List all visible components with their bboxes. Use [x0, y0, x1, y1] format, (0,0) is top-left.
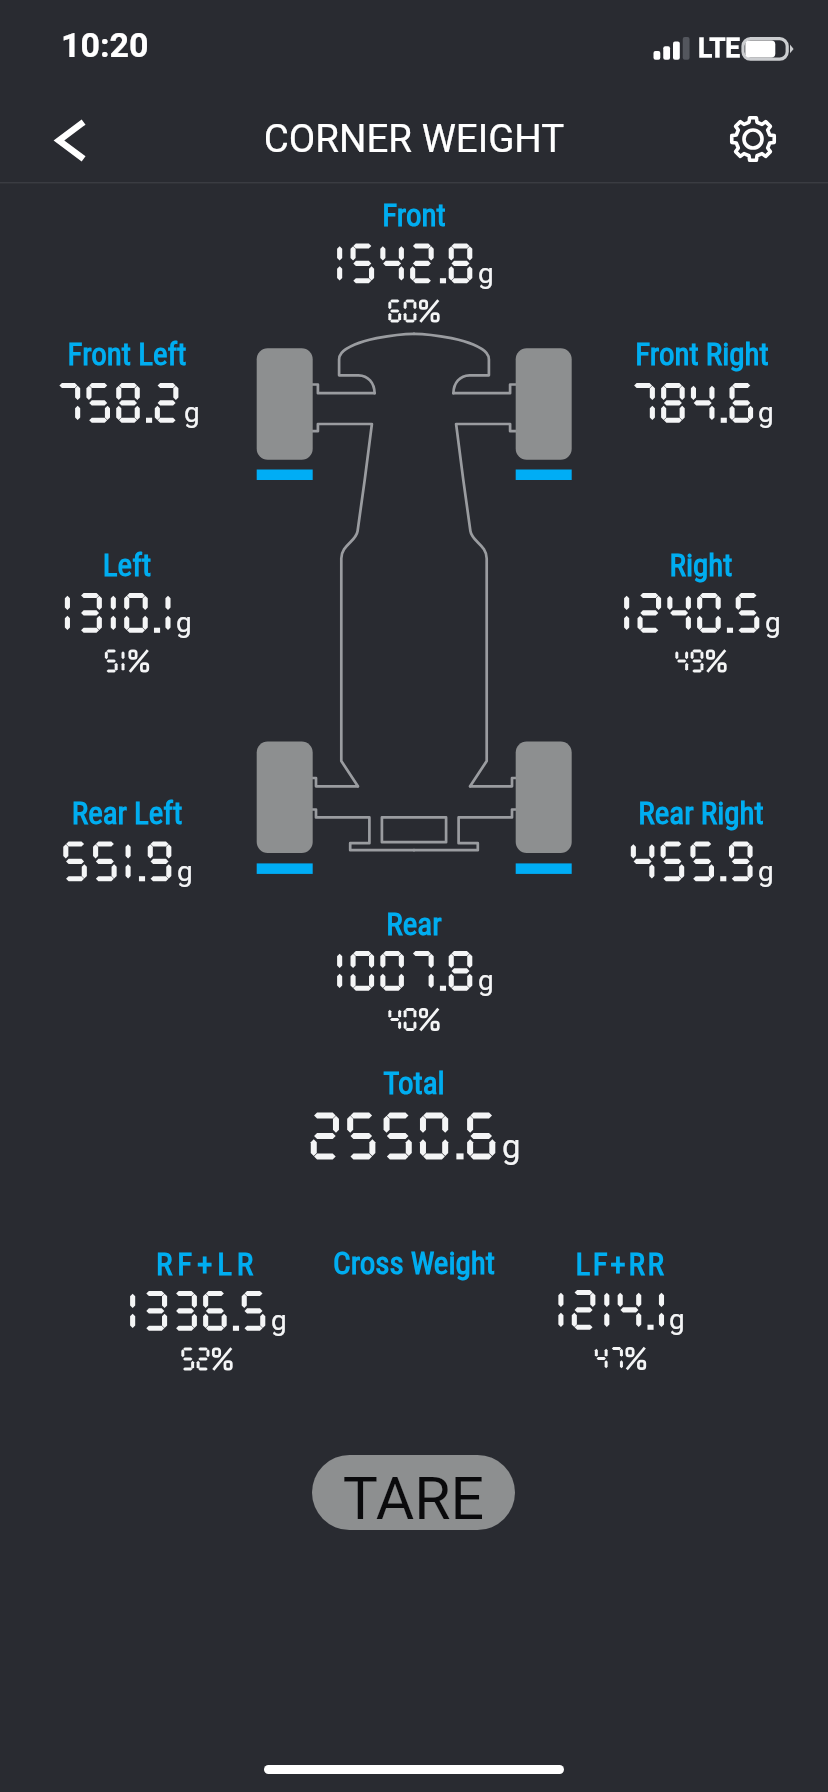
staticText: LF+RR: [471, 1246, 771, 1290]
staticText: g: [176, 606, 192, 639]
staticText: g: [271, 1304, 287, 1337]
staticText: Rear: [264, 906, 564, 950]
staticText: Total: [264, 1065, 564, 1109]
staticText: Rear Right: [551, 795, 828, 839]
staticText: g: [758, 855, 774, 888]
staticText: Left: [0, 547, 277, 591]
staticText: g: [478, 257, 494, 290]
button[interactable]: TARE: [312, 1455, 515, 1530]
staticText: Front Left: [0, 336, 277, 380]
staticText: 10:20: [61, 25, 149, 65]
staticText: Right: [551, 547, 828, 591]
button[interactable]: Settings: [713, 99, 793, 179]
staticText: TARE: [312, 1464, 515, 1526]
staticText: g: [758, 396, 774, 429]
button[interactable]: Back: [30, 101, 110, 179]
staticText: Front: [264, 197, 564, 241]
staticText: g: [177, 855, 193, 888]
staticText: g: [765, 606, 781, 639]
staticText: LTE: [698, 33, 740, 63]
staticText: Front Right: [552, 336, 828, 380]
staticText: CORNER WEIGHT: [214, 116, 614, 166]
staticText: Cross Weight: [264, 1245, 564, 1289]
staticText: g: [184, 396, 200, 429]
staticText: RF+LR: [57, 1246, 357, 1290]
staticText: g: [478, 964, 494, 997]
staticText: g: [669, 1303, 685, 1336]
staticText: Rear Left: [0, 795, 277, 839]
staticText: g: [502, 1128, 521, 1166]
